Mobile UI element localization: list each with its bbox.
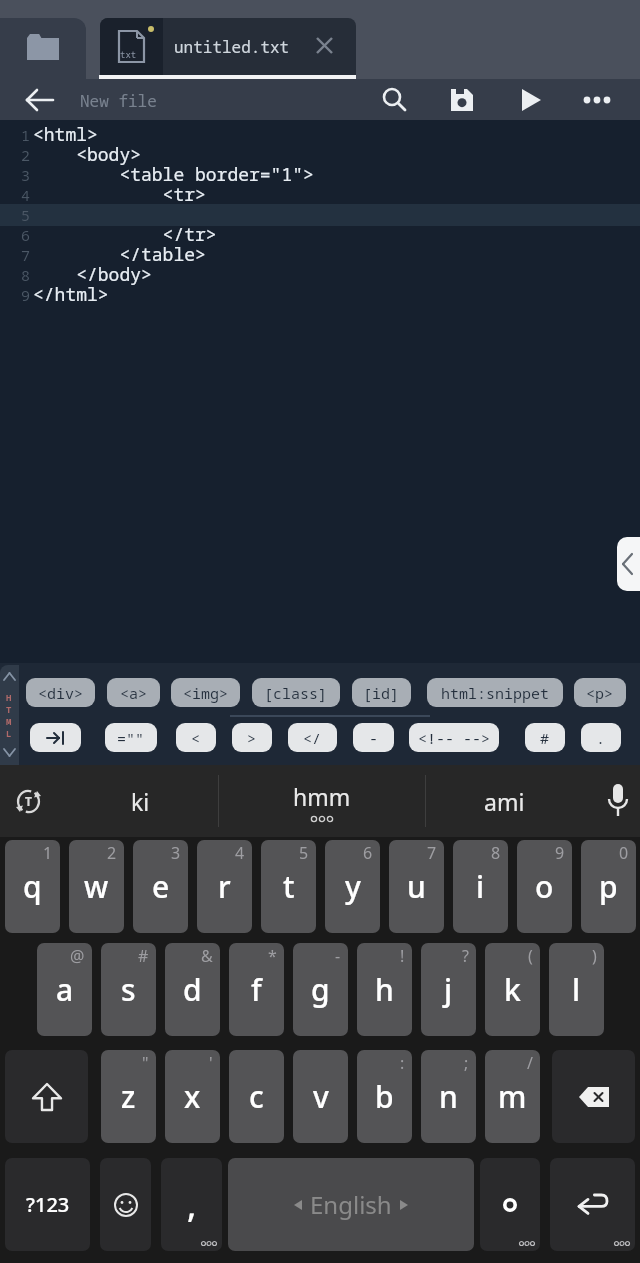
button[interactable]: - [353,723,394,752]
button[interactable]: txt [100,18,356,75]
button[interactable] [30,723,81,752]
staticText: a [56,969,74,1010]
button[interactable]: u [389,840,444,933]
button[interactable] [506,79,554,120]
button[interactable]: l [549,943,604,1036]
staticText: <html> [33,122,98,147]
staticText: ?123 [26,1191,70,1218]
button[interactable] [5,1050,88,1143]
button[interactable]: <a> [107,678,160,707]
button[interactable]: d [165,943,220,1036]
staticText: <tr> [33,182,206,207]
staticText: * [268,945,277,967]
button[interactable]: < [176,723,216,752]
staticText: </ [303,728,322,748]
staticText: 3 [171,842,181,864]
staticText: l [572,969,581,1010]
button[interactable] [100,1158,151,1251]
staticText: u [407,866,426,907]
button[interactable] [0,18,86,79]
staticText: M [6,715,12,727]
button[interactable]: p [581,840,636,933]
button[interactable]: z [101,1050,156,1143]
button[interactable]: <img> [171,678,240,707]
button[interactable]: f [229,943,284,1036]
button[interactable]: c [229,1050,284,1143]
button[interactable]: q [5,840,60,933]
staticText: 1 [21,125,31,145]
button[interactable]: T [4,777,52,825]
staticText: ="" [117,728,145,748]
staticText: ? [462,945,469,967]
button[interactable] [550,1158,635,1251]
button[interactable]: hmm [219,765,425,837]
button[interactable]: English [228,1158,474,1251]
staticText: </tr> [33,222,217,247]
staticText: f [251,969,262,1010]
button[interactable]: o [517,840,572,933]
button[interactable]: h [357,943,412,1036]
button[interactable]: > [232,723,272,752]
button[interactable]: t [261,840,316,933]
button[interactable]: H [0,665,19,765]
button[interactable] [438,79,486,120]
button[interactable]: m [485,1050,540,1143]
staticText: . [596,728,606,748]
staticText: T [6,703,12,715]
button[interactable] [16,79,64,120]
button[interactable]: a [37,943,92,1036]
button[interactable]: x [165,1050,220,1143]
staticText: ) [592,945,597,967]
button[interactable]: ki [62,765,218,837]
button[interactable] [317,38,332,53]
staticText: 8 [21,265,31,285]
button[interactable]: , [161,1158,222,1251]
button[interactable] [573,79,621,120]
button[interactable]: [class] [252,678,340,707]
button[interactable]: b [357,1050,412,1143]
button[interactable]: j [421,943,476,1036]
button[interactable] [552,1050,635,1143]
staticText: n [439,1076,458,1117]
button[interactable]: # [525,723,565,752]
button[interactable]: e [133,840,188,933]
button[interactable]: [id] [352,678,411,707]
button[interactable] [617,537,640,591]
staticText: 4 [21,185,31,205]
button[interactable]: . [581,723,621,752]
button[interactable]: r [197,840,252,933]
button[interactable]: ami [426,765,582,837]
button[interactable]: v [293,1050,348,1143]
button[interactable]: i [453,840,508,933]
staticText: & [201,945,213,967]
button[interactable]: ="" [105,723,157,752]
button[interactable]: w [69,840,124,933]
staticText: 9 [21,285,31,305]
button[interactable]: g [293,943,348,1036]
staticText: ' [209,1052,213,1074]
button[interactable]: n [421,1050,476,1143]
staticText: > [247,728,257,748]
button[interactable] [596,777,640,825]
staticText: - [369,728,379,748]
button[interactable]: k [485,943,540,1036]
button[interactable]: ?123 [5,1158,90,1251]
staticText: New file [80,90,157,112]
staticText: untitled.txt [174,36,290,58]
staticText: # [540,728,550,748]
button[interactable]: s [101,943,156,1036]
button[interactable]: <p> [574,678,626,707]
button[interactable] [480,1158,540,1251]
button[interactable]: <div> [26,678,95,707]
button[interactable]: y [325,840,380,933]
button[interactable] [371,79,419,120]
staticText: T [25,793,32,809]
button[interactable]: </ [288,723,337,752]
staticText: H [6,691,12,703]
button[interactable]: <!-- --> [409,723,499,752]
staticText: k [504,969,521,1010]
staticText: </body> [33,262,152,287]
staticText: 7 [21,245,31,265]
button[interactable]: html:snippet [427,678,563,707]
staticText: e [152,866,170,907]
